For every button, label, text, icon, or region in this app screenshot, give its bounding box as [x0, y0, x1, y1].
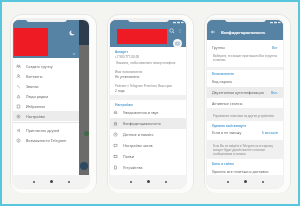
staticText: Удалить мой аккаунт [212, 123, 247, 127]
staticText: 6 месяцев [262, 131, 278, 135]
button[interactable]: Контакты [13, 71, 79, 81]
button[interactable]: Search [169, 28, 175, 34]
staticText: Рейтинг с Telegram Premium. Ваш срок [115, 84, 172, 88]
staticText: Выберите, кто может приглашать Вас в гру… [213, 54, 279, 62]
staticText: +7 900 777-00-00 [115, 55, 140, 59]
staticText: Имя пользователя [115, 70, 143, 74]
staticText: Настройки [26, 114, 45, 119]
button[interactable]: Двухэтапная аутентификация [207, 87, 283, 98]
staticText: Группы [212, 45, 225, 50]
button[interactable]: Данные и память [110, 129, 186, 140]
staticText: Если я не захожу [212, 130, 242, 135]
staticText: Конфиденциальность [221, 30, 266, 36]
button[interactable]: Избранное [13, 101, 79, 111]
button[interactable]: Night mode [69, 30, 75, 36]
staticText: Звонки [26, 84, 39, 89]
staticText: Нажмите, чтобы изменить номер телефона [116, 61, 176, 65]
staticText: Конфиденциальность [123, 121, 162, 126]
button[interactable]: Возможности Telegram [13, 135, 79, 145]
staticText: Вкл. [271, 91, 278, 95]
staticText: Код-пароль [212, 79, 233, 84]
button[interactable]: Home [147, 180, 150, 183]
button[interactable]: Код-пароль [207, 76, 283, 87]
staticText: Пригласить друзей [26, 128, 60, 133]
staticText: Избранное [26, 104, 46, 109]
button[interactable]: Папки [110, 151, 186, 162]
staticText: Возможности Telegram [26, 138, 67, 143]
staticText: Настройки чатов [123, 143, 153, 148]
button[interactable]: Back [210, 29, 216, 35]
staticText: Контакты [26, 74, 43, 79]
button[interactable]: Конфиденциальность [110, 118, 186, 129]
staticText: Удалить все платежи и доставки [212, 169, 269, 174]
button[interactable]: Устройства [110, 162, 186, 173]
button[interactable]: Звонки [13, 81, 79, 91]
staticText: Папки [123, 154, 134, 159]
staticText: Безопасность [212, 71, 235, 75]
button[interactable]: Если я не захожу [207, 130, 283, 135]
staticText: 2 года [115, 89, 125, 93]
staticText: Аккаунт [115, 49, 128, 53]
button[interactable]: Создать группу [13, 61, 79, 71]
staticText: Люди рядом [26, 94, 48, 99]
button[interactable]: Change photo [173, 39, 182, 48]
button[interactable]: Home [50, 180, 53, 183]
staticText: Управление сеансами на других устройства… [213, 114, 274, 118]
staticText: Все [272, 46, 278, 50]
button[interactable]: Home [244, 180, 247, 183]
staticText: Устройства [123, 165, 143, 170]
button[interactable]: New message [80, 162, 88, 170]
staticText: Двухэтапная аутентификация [212, 90, 264, 95]
staticText: Данные и память [123, 132, 154, 137]
button[interactable]: Настройки чатов [110, 140, 186, 151]
button[interactable]: Пригласить друзей [13, 125, 79, 135]
staticText: Активные сеансы [212, 101, 243, 106]
staticText: Не установлено [115, 75, 140, 79]
button[interactable]: Группы [207, 45, 283, 50]
staticText: Настройки [115, 102, 133, 106]
button[interactable]: Активные сеансы [207, 98, 283, 108]
staticText: Уведомления и звук [123, 110, 159, 115]
button[interactable]: Настройки [13, 111, 79, 121]
button[interactable]: Удалить все платежи и доставки [207, 167, 283, 175]
staticText: Боты и сайты [212, 161, 234, 165]
staticText: Создать группу [26, 64, 53, 69]
button[interactable]: Люди рядом [13, 91, 79, 101]
button[interactable]: More options [177, 28, 183, 34]
button[interactable]: Уведомления и звук [110, 107, 186, 118]
staticText: Если Вы не зайдёте в Telegram за это вре… [213, 144, 279, 156]
